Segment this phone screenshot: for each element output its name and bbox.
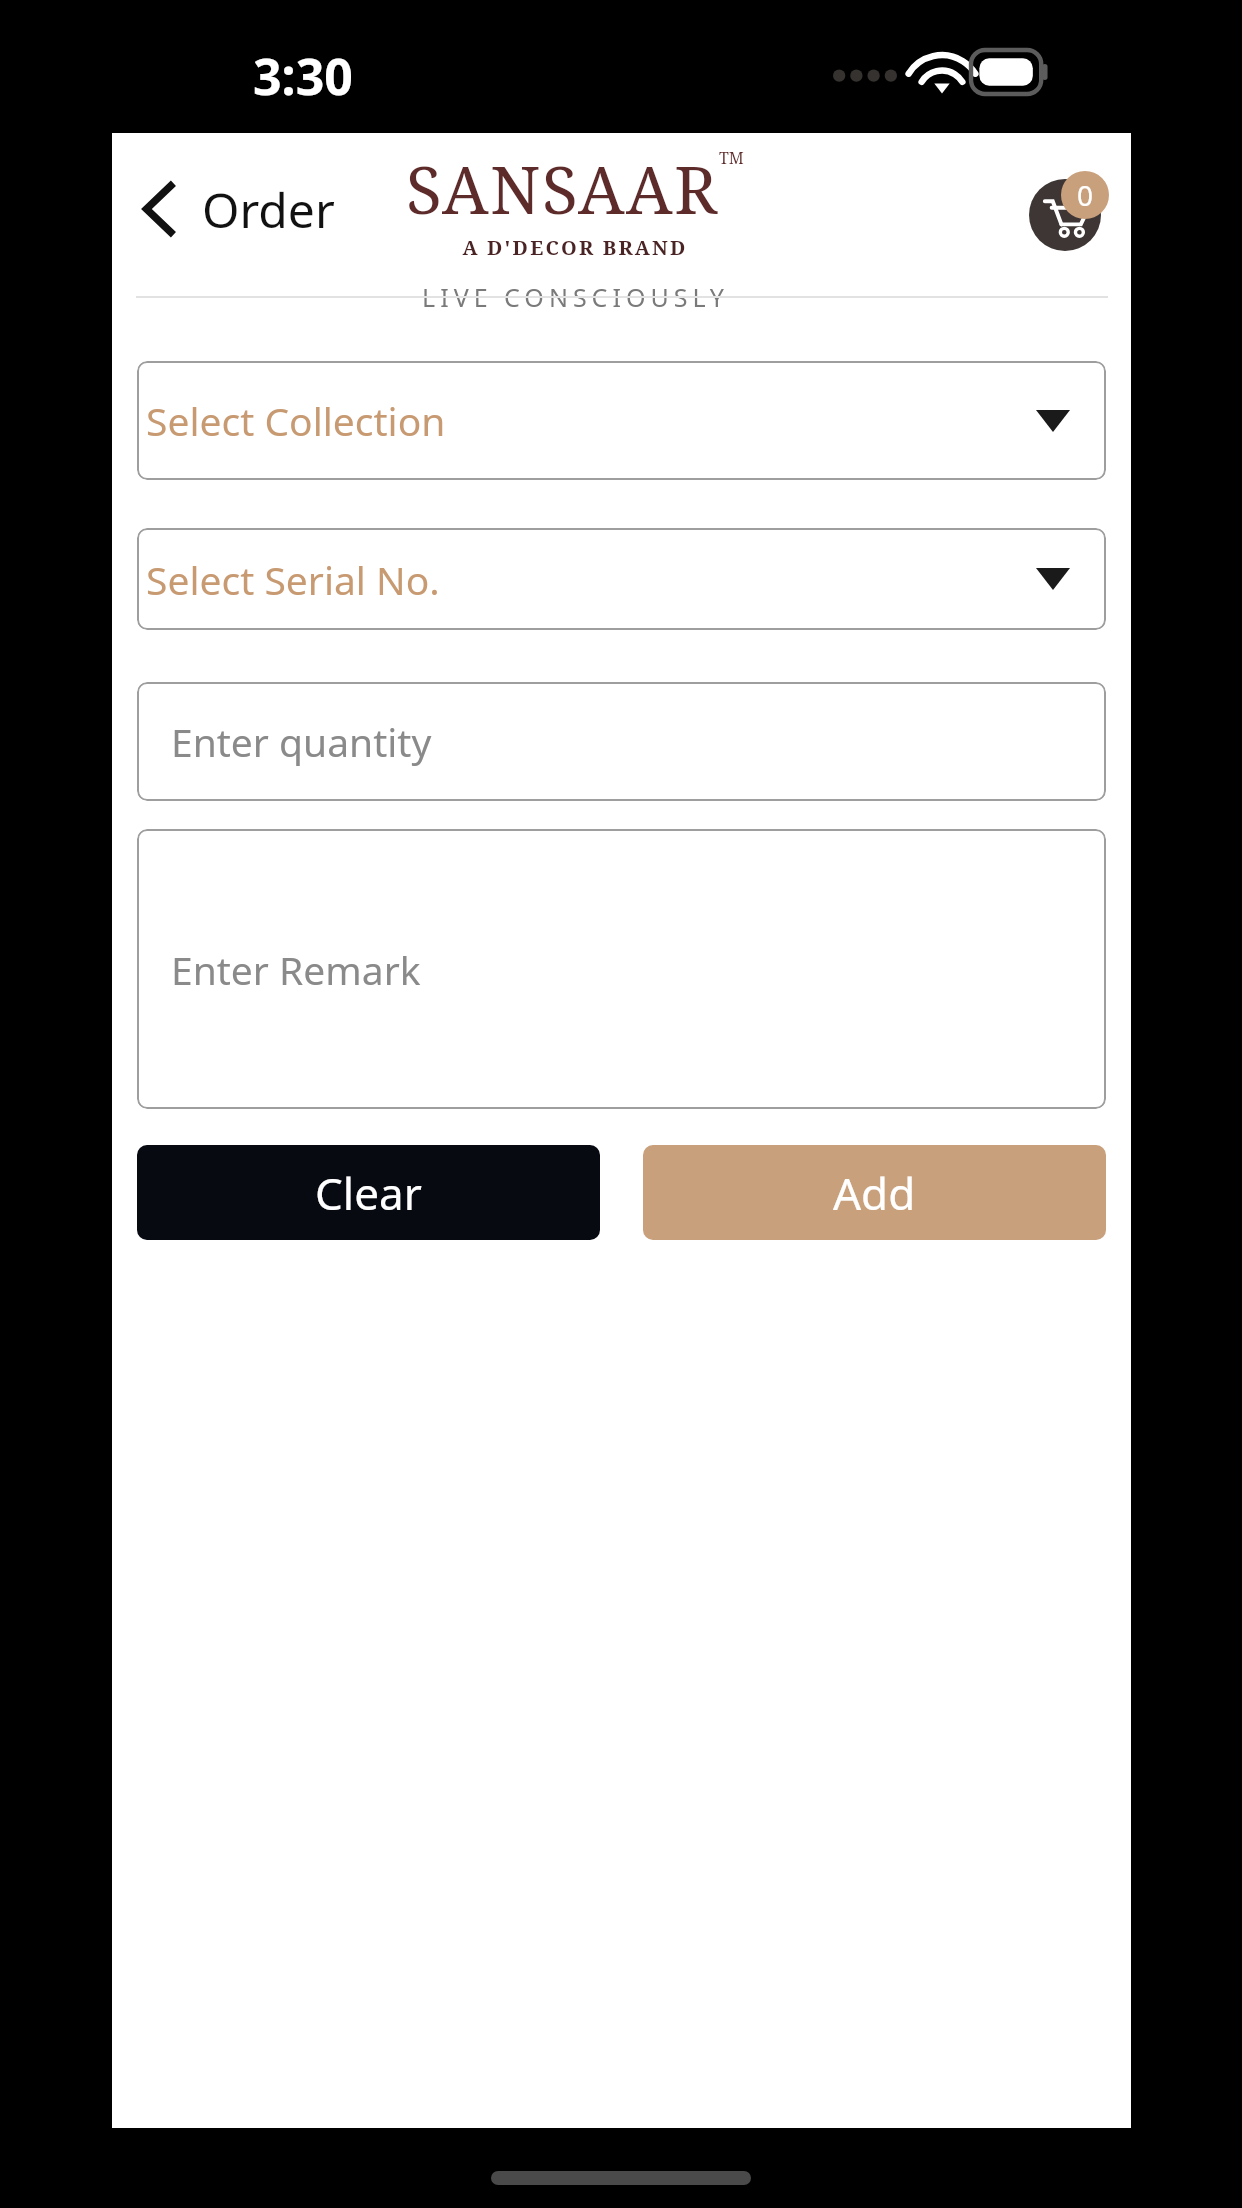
staticText: Clear bbox=[315, 1163, 422, 1223]
staticText: Select Serial No. bbox=[146, 553, 440, 606]
staticText: Enter quantity bbox=[171, 715, 432, 768]
staticText: TM bbox=[719, 147, 744, 169]
button[interactable]: Enter quantity bbox=[137, 682, 1106, 801]
staticText: Add bbox=[833, 1163, 916, 1223]
staticText: 0 bbox=[1077, 176, 1094, 214]
staticText: A D'DECOR BRAND bbox=[462, 234, 688, 261]
button[interactable]: Add bbox=[643, 1145, 1106, 1240]
other: Back bbox=[138, 182, 180, 236]
button[interactable]: Cart bbox=[1029, 171, 1109, 251]
staticText: Select Collection bbox=[146, 394, 446, 447]
button[interactable]: Enter Remark bbox=[137, 829, 1106, 1109]
button[interactable]: Select Collection bbox=[137, 361, 1106, 480]
staticText: SANSAAR bbox=[406, 143, 719, 233]
staticText: 3:30 bbox=[253, 42, 353, 110]
staticText: LIVE CONSCIOUSLY bbox=[422, 280, 729, 314]
staticText: Enter Remark bbox=[171, 943, 421, 996]
staticText: Order bbox=[202, 177, 335, 242]
button[interactable]: Select Serial No. bbox=[137, 528, 1106, 630]
button[interactable]: Back bbox=[130, 166, 343, 252]
button[interactable]: Clear bbox=[137, 1145, 600, 1240]
